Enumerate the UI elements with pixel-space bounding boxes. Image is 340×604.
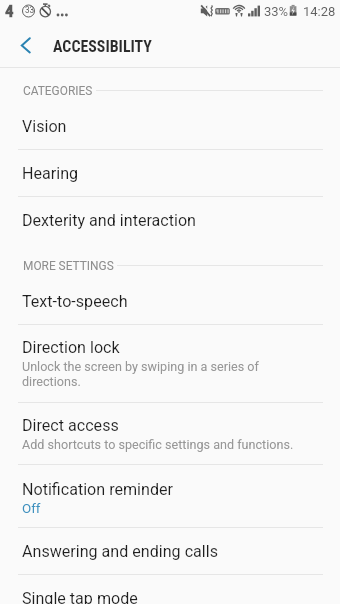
button[interactable]: Dexterity and interaction: [0, 197, 340, 244]
staticText: Add shortcuts to specific settings and f…: [22, 437, 294, 452]
button[interactable]: Notification reminder: [0, 465, 340, 528]
staticText: Single tap mode: [22, 589, 138, 604]
staticText: 33%: [264, 4, 289, 19]
staticText: CATEGORIES: [23, 84, 93, 98]
staticText: ACCESSIBILITY: [53, 37, 152, 56]
button[interactable]: Navigate up: [8, 28, 44, 67]
button[interactable]: Single tap mode: [0, 575, 340, 604]
staticText: 14:28: [303, 4, 336, 19]
staticText: Vision: [22, 117, 67, 136]
staticText: Direction lock: [22, 338, 120, 357]
button[interactable]: Text-to-speech: [0, 278, 340, 325]
staticText: Dexterity and interaction: [22, 211, 196, 230]
staticText: Unlock the screen by swiping in a series…: [22, 359, 259, 389]
staticText: Direct access: [22, 416, 119, 435]
staticText: 4: [5, 1, 14, 21]
staticText: Notification reminder: [22, 480, 173, 499]
staticText: Off: [22, 501, 41, 517]
button[interactable]: Vision: [0, 103, 340, 150]
staticText: 33: [25, 5, 35, 15]
staticText: Text-to-speech: [22, 292, 128, 311]
button[interactable]: Direct access: [0, 403, 340, 465]
button[interactable]: Hearing: [0, 150, 340, 197]
button[interactable]: Answering and ending calls: [0, 528, 340, 575]
button[interactable]: Direction lock: [0, 325, 340, 403]
staticText: MORE SETTINGS: [23, 259, 114, 273]
staticText: Answering and ending calls: [22, 542, 218, 561]
staticText: Hearing: [22, 164, 79, 183]
